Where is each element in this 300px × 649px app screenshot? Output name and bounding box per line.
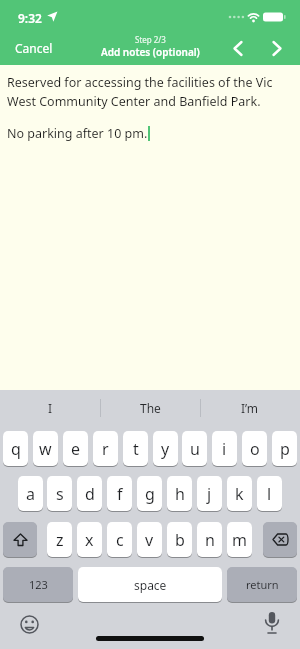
button[interactable]: u — [182, 431, 207, 467]
staticText: c — [116, 529, 124, 551]
staticText: d — [85, 483, 95, 505]
button[interactable]: g — [137, 476, 162, 512]
button[interactable]: o — [242, 431, 267, 467]
button[interactable]: I — [0, 390, 100, 425]
button[interactable]: j — [197, 476, 222, 512]
button[interactable]: w — [33, 431, 58, 467]
button[interactable]: i — [212, 431, 237, 467]
staticText: n — [205, 529, 215, 551]
button[interactable]: t — [123, 431, 148, 467]
staticText: b — [175, 529, 185, 551]
staticText: t — [133, 438, 139, 460]
button[interactable]: x — [77, 522, 102, 558]
button[interactable]: a — [18, 476, 43, 512]
staticText: I — [48, 400, 53, 416]
staticText: f — [117, 483, 123, 505]
button[interactable]: z — [47, 522, 72, 558]
staticText: return — [246, 577, 279, 592]
staticText: 9:32 — [18, 10, 42, 26]
button[interactable]: k — [227, 476, 252, 512]
staticText: r — [102, 438, 109, 460]
staticText: z — [56, 529, 64, 551]
button[interactable]: r — [93, 431, 118, 467]
button[interactable]: h — [167, 476, 192, 512]
staticText: g — [145, 483, 155, 505]
staticText: k — [235, 483, 244, 505]
button[interactable]: e — [63, 431, 88, 467]
staticText: x — [85, 529, 94, 551]
staticText: s — [56, 483, 64, 505]
staticText: a — [26, 483, 35, 505]
staticText: Reserved for accessing the facilities of… — [7, 74, 273, 110]
staticText: No parking after 10 pm. — [7, 125, 148, 142]
staticText: w — [39, 438, 52, 460]
button[interactable] — [263, 522, 297, 558]
staticText: q — [11, 438, 21, 460]
staticText: y — [161, 438, 170, 460]
staticText: 123 — [29, 577, 48, 592]
staticText: o — [250, 438, 260, 460]
staticText: Cancel — [15, 40, 53, 56]
button[interactable]: s — [47, 476, 72, 512]
button[interactable]: n — [197, 522, 222, 558]
button[interactable]: 123 — [3, 567, 73, 603]
button[interactable]: b — [167, 522, 192, 558]
button[interactable]: space — [78, 567, 222, 603]
staticText: Add notes (optional) — [101, 45, 200, 59]
staticText: u — [190, 438, 200, 460]
button[interactable] — [14, 609, 44, 639]
button[interactable] — [265, 35, 289, 61]
button[interactable] — [257, 607, 287, 639]
staticText: h — [175, 483, 185, 505]
button[interactable]: f — [107, 476, 132, 512]
staticText: I’m — [241, 400, 259, 416]
staticText: p — [280, 438, 290, 460]
staticText: i — [222, 438, 227, 460]
button[interactable]: Cancel — [8, 36, 62, 60]
staticText: The — [140, 400, 161, 416]
staticText: e — [71, 438, 81, 460]
button[interactable]: d — [77, 476, 102, 512]
button[interactable] — [3, 522, 37, 558]
staticText: j — [207, 483, 212, 505]
staticText: m — [232, 529, 247, 551]
staticText: l — [267, 483, 272, 505]
button[interactable]: m — [227, 522, 252, 558]
staticText: space — [134, 577, 167, 593]
button[interactable]: q — [3, 431, 28, 467]
button[interactable]: v — [137, 522, 162, 558]
button[interactable] — [226, 35, 250, 61]
button[interactable]: y — [153, 431, 178, 467]
staticText: Step 2/3 — [135, 34, 166, 45]
button[interactable]: c — [107, 522, 132, 558]
button[interactable]: I’m — [200, 390, 300, 425]
button[interactable]: return — [227, 567, 297, 603]
button[interactable]: l — [257, 476, 282, 512]
staticText: v — [145, 529, 154, 551]
button[interactable]: The — [100, 390, 200, 425]
button[interactable]: p — [272, 431, 297, 467]
